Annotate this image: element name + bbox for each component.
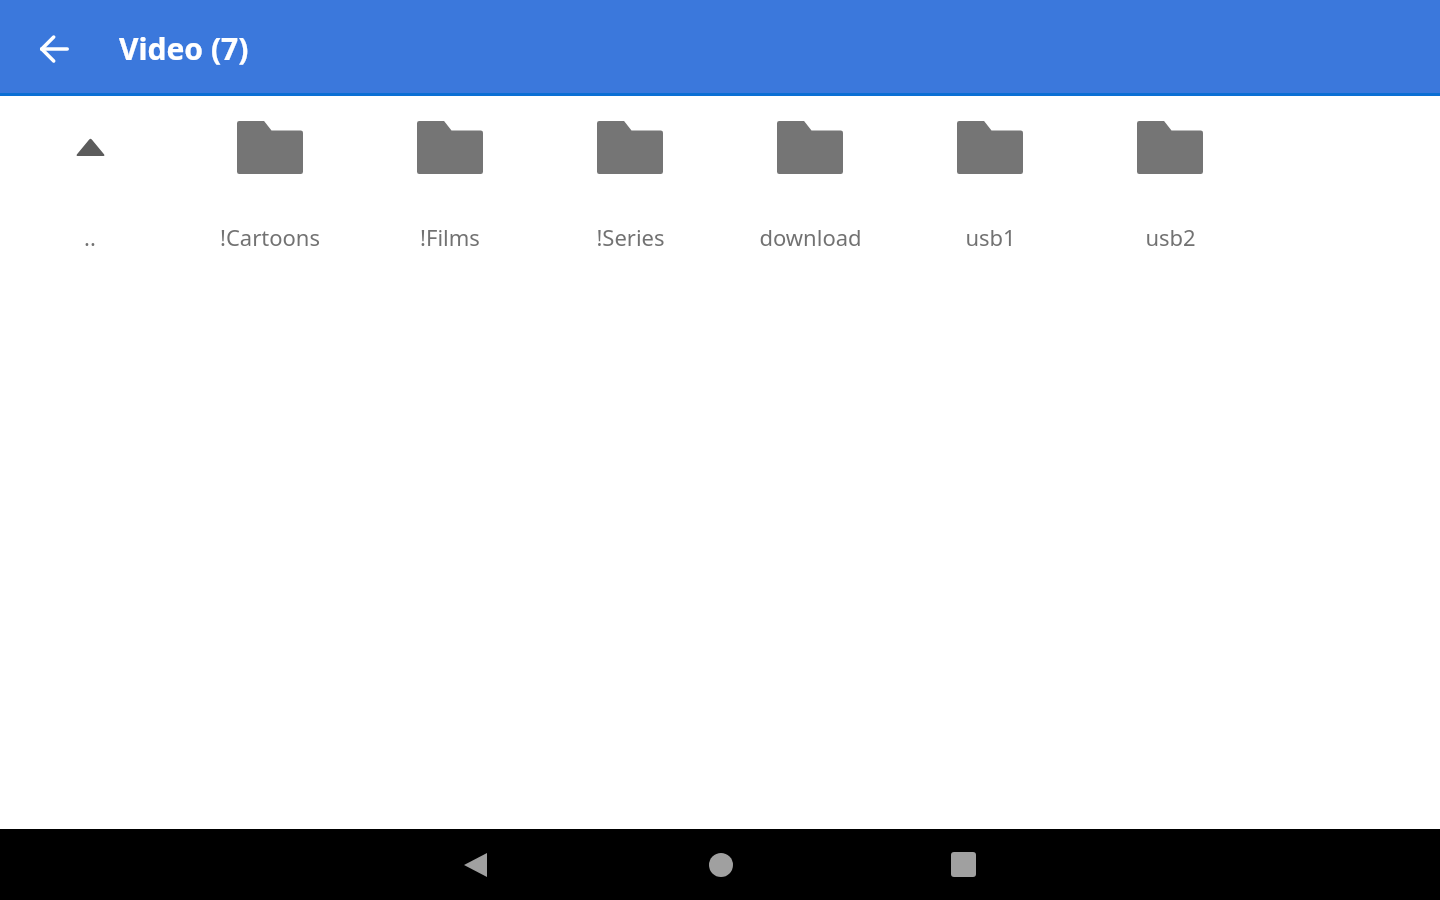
button[interactable]: Home <box>655 829 786 900</box>
button[interactable]: !Series <box>540 96 720 296</box>
staticText: Video (7) <box>119 28 249 69</box>
staticText: .. <box>84 222 96 252</box>
button[interactable]: Navigate up <box>18 13 90 85</box>
button[interactable]: download <box>720 96 900 296</box>
staticText: !Films <box>420 222 480 252</box>
button[interactable]: !Cartoons <box>180 96 360 296</box>
staticText: download <box>759 222 862 252</box>
button[interactable]: !Films <box>360 96 540 296</box>
staticText: !Series <box>596 222 665 252</box>
staticText: usb1 <box>965 222 1016 252</box>
button[interactable]: Recent apps <box>898 829 1029 900</box>
button[interactable]: .. <box>0 96 180 296</box>
staticText: !Cartoons <box>220 222 320 252</box>
button[interactable]: usb1 <box>900 96 1080 296</box>
button[interactable]: usb2 <box>1080 96 1260 296</box>
staticText: usb2 <box>1145 222 1196 252</box>
button[interactable]: Back <box>410 829 541 900</box>
